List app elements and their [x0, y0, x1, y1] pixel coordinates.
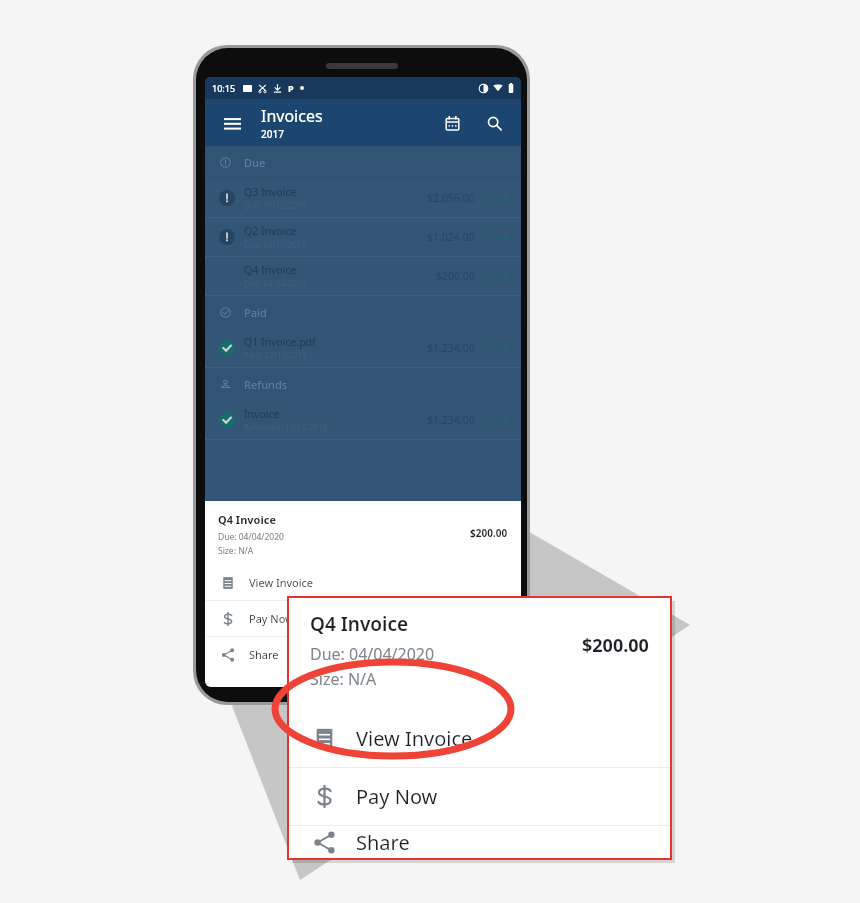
staticText: Refunds — [244, 377, 288, 392]
staticText: $2,056.00 — [427, 191, 475, 205]
staticText: Due — [244, 155, 266, 170]
button[interactable]: Search — [479, 108, 509, 138]
staticText: Due: 04/04/2020 — [244, 278, 307, 289]
button[interactable]: Calendar — [437, 108, 467, 138]
button[interactable]: Pay Now — [205, 601, 521, 636]
button[interactable]: View Invoice — [205, 565, 521, 600]
button[interactable]: Invoice — [205, 401, 521, 439]
button[interactable]: More options — [489, 187, 511, 209]
button[interactable]: Pay Now — [288, 768, 671, 825]
staticText: 2017 — [261, 127, 284, 141]
staticText: Paid: 12/12/2018 — [244, 350, 308, 361]
staticText: Q4 Invoice — [310, 611, 409, 637]
staticText: Q2 Invoice — [244, 224, 297, 238]
button[interactable]: Q3 Invoice — [205, 179, 521, 217]
button[interactable]: More options — [489, 226, 511, 248]
staticText: $200.00 — [582, 633, 649, 658]
button[interactable]: Q1 Invoice.pdf — [205, 329, 521, 367]
staticText: Size: N/A — [218, 545, 254, 557]
staticText: Paid — [244, 305, 267, 320]
staticText: $200.00 — [436, 269, 475, 283]
staticText: Share — [249, 647, 279, 662]
staticText: Due: 04/04/2020 — [310, 643, 435, 665]
staticText: Invoices — [261, 105, 323, 127]
staticText: Size: N/A — [310, 668, 377, 690]
staticText: Pay Now — [356, 783, 438, 810]
staticText: View Invoice — [356, 725, 473, 752]
staticText: Due: 10/12/2019 — [244, 200, 307, 211]
staticText: Share — [356, 829, 410, 856]
staticText: $1,024.00 — [427, 230, 475, 244]
staticText: P — [288, 82, 294, 94]
staticText: Q4 Invoice — [218, 512, 276, 527]
staticText: Refunded: 12/13/2018 — [244, 422, 328, 433]
staticText: View Invoice — [249, 575, 314, 590]
staticText: Invoice — [244, 407, 280, 421]
staticText: Due: 04/04/2020 — [218, 531, 284, 543]
staticText: $1,234.00 — [427, 341, 475, 355]
button[interactable]: More options — [489, 337, 511, 359]
button[interactable]: Menu — [217, 108, 247, 138]
button[interactable]: Q2 Invoice — [205, 218, 521, 256]
staticText: $200.00 — [470, 526, 508, 540]
staticText: Pay Now — [249, 611, 294, 626]
staticText: Due: 04/10/2019 — [244, 239, 307, 250]
staticText: Q1 Invoice.pdf — [244, 335, 316, 349]
staticText: 10:15 — [212, 82, 236, 94]
button[interactable]: Share — [205, 637, 521, 672]
staticText: Q3 Invoice — [244, 185, 297, 199]
staticText: Q4 Invoice — [244, 263, 297, 277]
button[interactable]: View Invoice — [288, 710, 671, 767]
staticText: $1,234.00 — [427, 413, 475, 427]
button[interactable]: More options — [489, 409, 511, 431]
button[interactable]: Share — [288, 826, 671, 859]
button[interactable]: More options — [489, 265, 511, 287]
